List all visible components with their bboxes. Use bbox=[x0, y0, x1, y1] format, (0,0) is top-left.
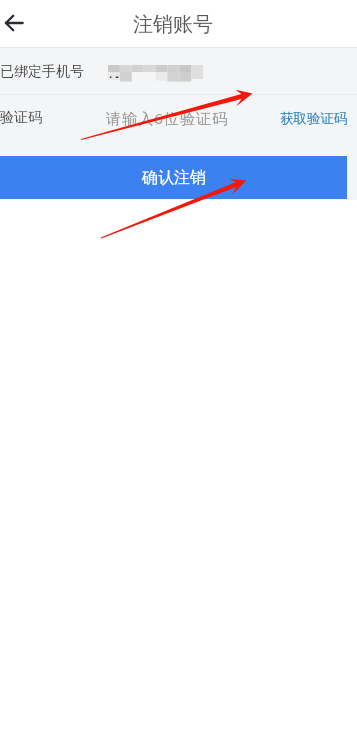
button[interactable]: 已绑定手机号 bbox=[0, 48, 357, 95]
staticText: 已绑定手机号 bbox=[0, 63, 84, 81]
staticText: 获取验证码 bbox=[280, 110, 348, 127]
staticText: 验证码 bbox=[0, 109, 42, 127]
button[interactable]: 获取验证码 bbox=[280, 110, 348, 127]
staticText: 注销账号 bbox=[133, 12, 213, 37]
staticText: 请输入6位验证码 bbox=[106, 108, 229, 129]
button[interactable]: Back bbox=[0, 0, 37, 47]
button[interactable]: 确认注销 bbox=[0, 156, 347, 199]
staticText: 确认注销 bbox=[142, 168, 206, 188]
